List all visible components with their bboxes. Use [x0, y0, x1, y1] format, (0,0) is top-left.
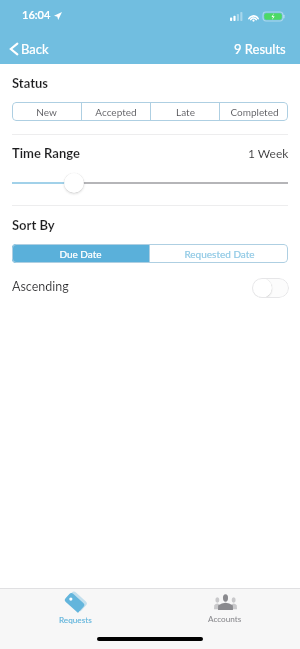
staticText: Sort By	[12, 217, 55, 233]
button[interactable]: Accepted	[82, 102, 150, 121]
staticText: Time Range	[12, 145, 80, 161]
staticText: Ascending	[12, 279, 69, 294]
staticText: 1 Week	[248, 146, 289, 160]
staticText: Completed	[230, 106, 279, 118]
staticText: Requested Date	[184, 248, 255, 260]
staticText: Late	[176, 106, 195, 118]
button[interactable]: Ascending toggle	[252, 278, 289, 298]
staticText: Accepted	[95, 106, 137, 118]
button[interactable]: Due Date	[12, 244, 149, 263]
staticText: Status	[12, 75, 49, 91]
staticText: Requests	[59, 615, 92, 625]
button[interactable]: New	[12, 102, 81, 121]
staticText: 16:04	[22, 8, 51, 21]
staticText: Due Date	[59, 248, 102, 260]
button[interactable]: Requests	[0, 589, 150, 649]
button[interactable]: Completed	[220, 102, 288, 121]
button[interactable]: Late	[151, 102, 219, 121]
staticText: Back	[21, 41, 49, 57]
button[interactable]: Requested Date	[150, 244, 288, 263]
staticText: New	[36, 106, 57, 118]
staticText: Accounts	[208, 614, 242, 624]
button[interactable]: Accounts	[150, 589, 300, 649]
button[interactable]: Time range slider	[64, 173, 84, 193]
staticText: 9 Results	[234, 41, 286, 57]
button[interactable]: Back	[4, 36, 57, 62]
